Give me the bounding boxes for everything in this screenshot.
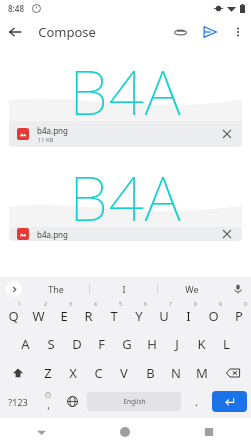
button[interactable]: The bbox=[22, 277, 89, 300]
staticText: X bbox=[69, 364, 77, 382]
staticText: . bbox=[195, 394, 198, 409]
button[interactable]: S bbox=[38, 329, 64, 358]
button[interactable]: L bbox=[214, 329, 239, 358]
staticText: , bbox=[47, 398, 50, 412]
button[interactable]: Back bbox=[0, 17, 30, 47]
button[interactable]: J bbox=[164, 329, 189, 358]
button[interactable]: X bbox=[60, 358, 85, 387]
staticText: 11 KB bbox=[37, 136, 54, 144]
staticText: 8:48 bbox=[8, 3, 24, 14]
staticText: Compose bbox=[38, 23, 96, 41]
staticText: U bbox=[159, 307, 169, 325]
staticText: F bbox=[98, 335, 105, 353]
staticText: E bbox=[60, 307, 68, 325]
staticText: R bbox=[84, 307, 93, 325]
button[interactable]: E bbox=[51, 300, 76, 329]
button[interactable]: N bbox=[163, 358, 189, 387]
button[interactable]: ?123 bbox=[0, 387, 36, 416]
button[interactable]: B bbox=[137, 358, 163, 387]
staticText: S bbox=[47, 335, 55, 353]
button[interactable]: Voice input bbox=[225, 277, 251, 300]
staticText: 9 bbox=[219, 301, 222, 308]
staticText: 5 bbox=[119, 301, 122, 308]
button[interactable]: V bbox=[111, 358, 137, 387]
button[interactable]: M bbox=[189, 358, 215, 387]
button[interactable]: B4A bbox=[9, 155, 242, 241]
button[interactable]: Backspace bbox=[215, 358, 251, 387]
button[interactable]: U bbox=[151, 300, 176, 329]
staticText: M bbox=[196, 364, 208, 382]
staticText: I bbox=[122, 283, 126, 295]
button[interactable]: Expand toolbar bbox=[6, 281, 22, 297]
button[interactable]: Emoji and comma bbox=[36, 387, 60, 416]
staticText: O bbox=[208, 307, 219, 325]
staticText: Y bbox=[135, 307, 143, 325]
button[interactable]: A bbox=[12, 329, 38, 358]
staticText: W bbox=[32, 307, 45, 325]
staticText: Q bbox=[8, 307, 19, 325]
staticText: A bbox=[21, 335, 30, 353]
button[interactable]: Attach file bbox=[165, 17, 195, 47]
staticText: b4a.png bbox=[37, 125, 68, 136]
button[interactable]: English bbox=[87, 392, 181, 411]
button[interactable]: Enter bbox=[212, 391, 247, 412]
staticText: 1 bbox=[18, 301, 21, 308]
staticText: L bbox=[223, 335, 230, 353]
button[interactable]: Remove attachment bbox=[220, 227, 234, 241]
button[interactable]: I bbox=[90, 277, 157, 300]
staticText: B4A bbox=[69, 155, 182, 225]
button[interactable]: Shift bbox=[0, 358, 35, 387]
staticText: 6 bbox=[144, 301, 147, 308]
staticText: P bbox=[235, 307, 243, 325]
staticText: B bbox=[146, 364, 155, 382]
button[interactable]: We bbox=[158, 277, 225, 300]
button[interactable]: P bbox=[226, 300, 251, 329]
staticText: H bbox=[147, 335, 157, 353]
button[interactable]: O bbox=[201, 300, 226, 329]
button[interactable]: . bbox=[184, 387, 208, 416]
staticText: N bbox=[171, 364, 181, 382]
button[interactable]: H bbox=[139, 329, 164, 358]
staticText: B4A bbox=[69, 49, 182, 119]
staticText: G bbox=[122, 335, 132, 353]
button[interactable]: Recent apps bbox=[167, 418, 251, 446]
button[interactable]: Change language bbox=[60, 387, 84, 416]
button[interactable]: Remove attachment bbox=[220, 127, 234, 141]
button[interactable]: Z bbox=[35, 358, 60, 387]
staticText: D bbox=[72, 335, 82, 353]
staticText: J bbox=[175, 335, 179, 353]
staticText: 3 bbox=[69, 301, 72, 308]
button[interactable]: I bbox=[176, 300, 201, 329]
staticText: English bbox=[123, 397, 146, 406]
staticText: T bbox=[110, 307, 118, 325]
staticText: Z bbox=[44, 364, 52, 382]
staticText: 7 bbox=[169, 301, 172, 308]
button[interactable]: F bbox=[89, 329, 114, 358]
button[interactable]: Q bbox=[0, 300, 26, 329]
button[interactable]: Y bbox=[126, 300, 151, 329]
button[interactable]: W bbox=[26, 300, 51, 329]
staticText: The bbox=[48, 283, 64, 295]
staticText: K bbox=[197, 335, 206, 353]
button[interactable]: D bbox=[64, 329, 89, 358]
button[interactable]: C bbox=[85, 358, 111, 387]
staticText: I bbox=[186, 307, 191, 325]
button[interactable]: R bbox=[76, 300, 101, 329]
staticText: We bbox=[185, 283, 199, 295]
button[interactable]: K bbox=[189, 329, 214, 358]
button[interactable]: T bbox=[101, 300, 126, 329]
staticText: b4a.png bbox=[37, 229, 68, 240]
staticText: V bbox=[120, 364, 128, 382]
staticText: 2 bbox=[44, 301, 47, 308]
button[interactable]: More options bbox=[225, 19, 251, 45]
staticText: 0 bbox=[244, 301, 247, 308]
staticText: 8 bbox=[194, 301, 197, 308]
button[interactable]: Home bbox=[83, 418, 167, 446]
button[interactable]: Back bbox=[0, 418, 83, 446]
button[interactable]: B4A bbox=[9, 49, 242, 147]
button[interactable]: G bbox=[114, 329, 139, 358]
staticText: C bbox=[94, 364, 103, 382]
button[interactable]: Send bbox=[195, 17, 225, 47]
staticText: ?123 bbox=[8, 396, 28, 408]
staticText: 4 bbox=[94, 301, 97, 308]
